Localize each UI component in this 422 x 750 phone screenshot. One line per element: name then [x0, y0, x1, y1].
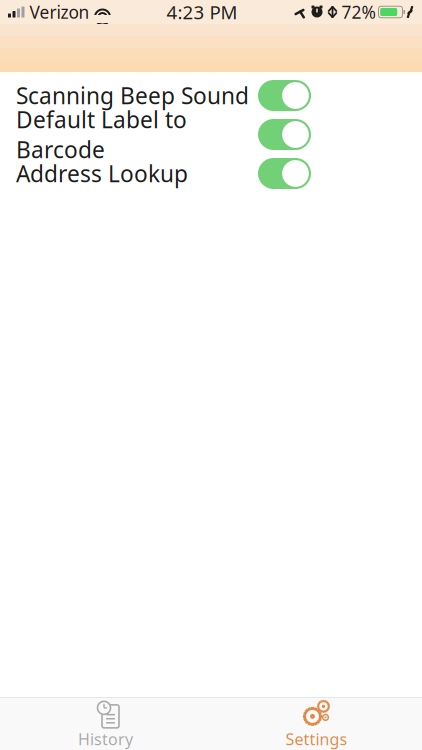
staticText: 72% — [341, 0, 375, 23]
staticText: History — [78, 728, 133, 750]
staticText: Address Lookup — [16, 158, 188, 188]
staticText: Default Label to Barcode — [16, 104, 187, 165]
button[interactable]: History — [0, 698, 211, 750]
staticText: Scanning Beep Sound — [16, 80, 249, 110]
button[interactable]: Address Lookup — [0, 154, 422, 193]
button[interactable]: Scanning Beep Sound — [0, 76, 422, 115]
button[interactable]: Default Label to Barcode — [0, 115, 422, 154]
staticText: Settings — [285, 728, 347, 750]
button[interactable]: Settings — [211, 698, 422, 750]
staticText: 4:23 PM — [166, 0, 237, 24]
staticText: Verizon — [29, 0, 89, 23]
